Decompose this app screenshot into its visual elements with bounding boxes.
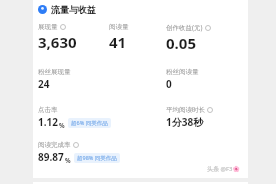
other: Traffic and earnings <box>38 5 47 14</box>
button[interactable]: Traffic and earnings <box>38 4 96 15</box>
staticText: 点击率 <box>38 106 58 114</box>
staticText: 展现量 <box>38 23 58 31</box>
staticText: 阅读完成率 <box>38 141 71 149</box>
staticText: % <box>65 156 71 164</box>
staticText: 阅读量 <box>109 23 129 31</box>
button[interactable]: 超98% 同类作品 <box>77 154 117 162</box>
staticText: 3,630 <box>38 32 77 52</box>
staticText: 0.05 <box>166 33 196 53</box>
staticText: 24 <box>38 77 50 91</box>
other: Info about 展现量 <box>60 24 66 30</box>
staticText: 流量与收益 <box>51 4 96 15</box>
staticText: 1.12 <box>38 115 58 129</box>
staticText: 粉丝展现量 <box>38 68 71 76</box>
button[interactable]: 超6% 同类作品 <box>71 119 108 127</box>
button[interactable]: 平均阅读时长 <box>166 106 213 129</box>
staticText: 89.87 <box>38 150 64 164</box>
staticText: 粉丝阅读量 <box>166 68 199 76</box>
button[interactable]: Traffic and earnings <box>33 0 248 178</box>
staticText: 头条 @F3🌸 <box>207 165 240 173</box>
staticText: 超6% 同类作品 <box>71 119 108 127</box>
staticText: 平均阅读时长 <box>166 106 205 114</box>
staticText: 0 <box>166 77 172 91</box>
other: Info about 阅读完成率 <box>73 142 79 148</box>
button[interactable]: 创作收益(元) <box>166 23 211 53</box>
button[interactable]: 阅读完成率 <box>38 141 120 164</box>
other: Info about 创作收益(元) <box>205 25 211 31</box>
button[interactable]: 阅读量 <box>109 23 129 52</box>
button[interactable]: 粉丝阅读量 <box>166 68 199 91</box>
staticText: 超98% 同类作品 <box>77 154 117 162</box>
other: Info about 平均阅读时长 <box>207 107 213 113</box>
staticText: 41 <box>109 32 127 52</box>
staticText: 创作收益(元) <box>166 23 203 32</box>
button[interactable]: 展现量 <box>38 23 77 52</box>
staticText: 1分38秒 <box>166 115 204 129</box>
button[interactable]: 粉丝展现量 <box>38 68 71 91</box>
staticText: % <box>59 121 65 129</box>
button[interactable]: 点击率 <box>38 106 111 129</box>
